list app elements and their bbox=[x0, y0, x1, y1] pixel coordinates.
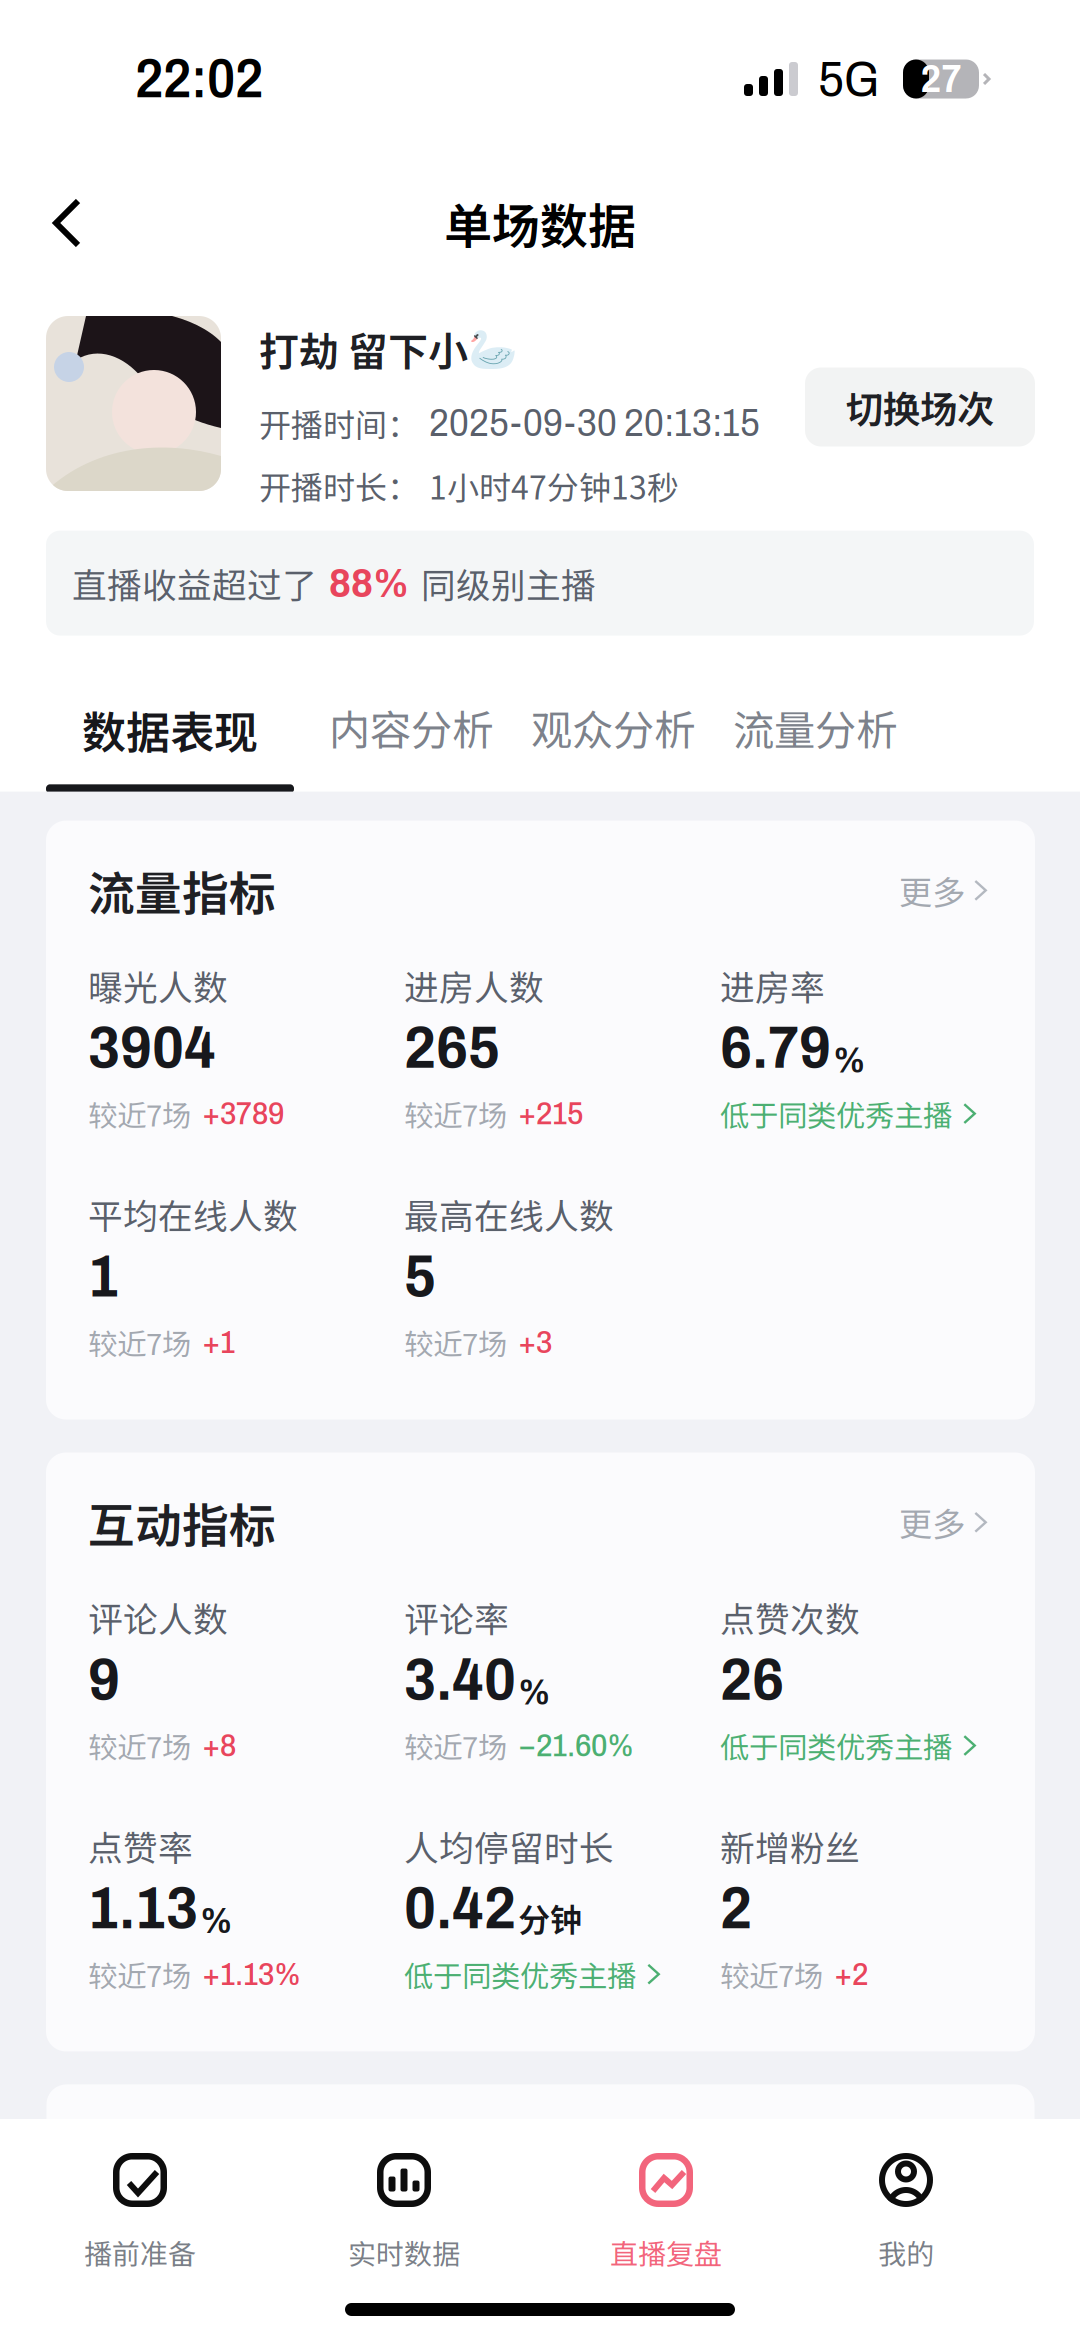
staticText: 数据表现 bbox=[82, 698, 258, 761]
staticText: 5G bbox=[818, 51, 879, 106]
staticText: 3904 bbox=[88, 1015, 216, 1080]
staticText: +3 bbox=[518, 1325, 552, 1360]
staticText: 新增粉丝 bbox=[720, 1821, 860, 1871]
staticText: 播前准备 bbox=[84, 2232, 196, 2272]
staticText: +215 bbox=[518, 1096, 584, 1131]
staticText: 27 bbox=[920, 58, 961, 100]
staticText: 同级别主播 bbox=[421, 558, 596, 608]
staticText: 曝光人数 bbox=[88, 960, 228, 1010]
staticText: 5 bbox=[404, 1244, 436, 1309]
staticText: 点赞率 bbox=[88, 1821, 193, 1871]
staticText: 内容分析 bbox=[329, 698, 493, 757]
staticText: 较近7场 bbox=[88, 1953, 191, 1995]
staticText: 1 bbox=[88, 1244, 119, 1309]
staticText: 进房率 bbox=[720, 960, 825, 1010]
staticText: % bbox=[833, 1040, 866, 1080]
staticText: 🦢 bbox=[468, 325, 518, 372]
staticText: 低于同类优秀主播 bbox=[720, 1092, 952, 1135]
button[interactable]: 切换场次 bbox=[805, 367, 1035, 446]
staticText: 直播收益超过了 bbox=[72, 558, 317, 608]
staticText: 较近7场 bbox=[88, 1724, 191, 1767]
staticText: 2025-09-30 20:13:15 bbox=[429, 402, 760, 444]
staticText: 互动指标 bbox=[88, 1488, 276, 1556]
staticText: 较近7场 bbox=[404, 1092, 507, 1135]
staticText: 0.42 bbox=[404, 1876, 516, 1941]
staticText: 观众分析 bbox=[531, 698, 695, 757]
staticText: 低于同类优秀主播 bbox=[404, 1953, 636, 1995]
staticText: 打劫 留下小 bbox=[259, 320, 468, 378]
staticText: 单场数据 bbox=[444, 188, 636, 258]
staticText: 1.13 bbox=[88, 1876, 198, 1941]
button[interactable]: 更多 bbox=[899, 866, 993, 914]
button[interactable]: 观众分析 bbox=[531, 698, 695, 810]
staticText: 低于同类优秀主播 bbox=[720, 1724, 952, 1767]
staticText: 我的 bbox=[878, 2232, 934, 2272]
button[interactable]: 流量分析 bbox=[733, 698, 897, 810]
staticText: 开播时间： bbox=[259, 400, 419, 446]
staticText: 开播时长： bbox=[259, 462, 419, 509]
staticText: +2 bbox=[834, 1957, 868, 1992]
staticText: 点赞次数 bbox=[720, 1592, 860, 1642]
button[interactable]: 直播复盘 bbox=[542, 2146, 790, 2278]
button[interactable]: Back bbox=[0, 173, 114, 273]
staticText: 进房人数 bbox=[404, 960, 544, 1010]
button[interactable]: 实时数据 bbox=[266, 2146, 542, 2278]
staticText: 平均在线人数 bbox=[88, 1189, 298, 1239]
staticText: 较近7场 bbox=[88, 1092, 191, 1135]
staticText: 流量指标 bbox=[88, 857, 276, 924]
staticText: 1小时47分钟13秒 bbox=[429, 462, 679, 509]
button[interactable]: 内容分析 bbox=[329, 698, 493, 810]
staticText: % bbox=[518, 1672, 551, 1712]
staticText: 较近7场 bbox=[404, 1321, 507, 1363]
staticText: +1.13% bbox=[202, 1957, 301, 1992]
staticText: −21.60% bbox=[518, 1728, 634, 1763]
staticText: +1 bbox=[202, 1325, 235, 1360]
staticText: 实时数据 bbox=[348, 2232, 460, 2272]
staticText: 直播复盘 bbox=[610, 2232, 722, 2272]
staticText: 6.79 bbox=[720, 1015, 831, 1080]
staticText: 人均停留时长 bbox=[404, 1821, 614, 1871]
staticText: 较近7场 bbox=[404, 1724, 507, 1767]
staticText: 流量分析 bbox=[733, 698, 897, 757]
button[interactable]: 我的 bbox=[790, 2146, 1022, 2278]
staticText: 较近7场 bbox=[88, 1321, 191, 1363]
staticText: 88% bbox=[329, 561, 409, 606]
button[interactable]: 更多 bbox=[899, 1498, 993, 1546]
staticText: % bbox=[200, 1900, 233, 1941]
staticText: 最高在线人数 bbox=[404, 1189, 614, 1239]
staticText: 更多 bbox=[899, 1498, 965, 1546]
staticText: 分钟 bbox=[518, 1895, 582, 1941]
staticText: 3.40 bbox=[404, 1647, 516, 1712]
staticText: 2 bbox=[720, 1876, 752, 1941]
staticText: 切换场次 bbox=[846, 380, 994, 434]
staticText: 更多 bbox=[899, 866, 965, 914]
staticText: 9 bbox=[88, 1647, 120, 1712]
staticText: 评论率 bbox=[404, 1592, 509, 1642]
staticText: 较近7场 bbox=[720, 1953, 823, 1995]
staticText: 265 bbox=[404, 1015, 500, 1080]
staticText: 22:02 bbox=[135, 49, 263, 109]
button[interactable]: 播前准备 bbox=[14, 2146, 266, 2278]
staticText: 评论人数 bbox=[88, 1592, 228, 1642]
staticText: +3789 bbox=[202, 1096, 284, 1131]
staticText: 26 bbox=[720, 1647, 784, 1712]
button[interactable]: 数据表现 bbox=[46, 698, 294, 810]
staticText: +8 bbox=[202, 1728, 236, 1763]
staticText: 诃直播复盘诊断建议 bbox=[88, 2117, 511, 2185]
